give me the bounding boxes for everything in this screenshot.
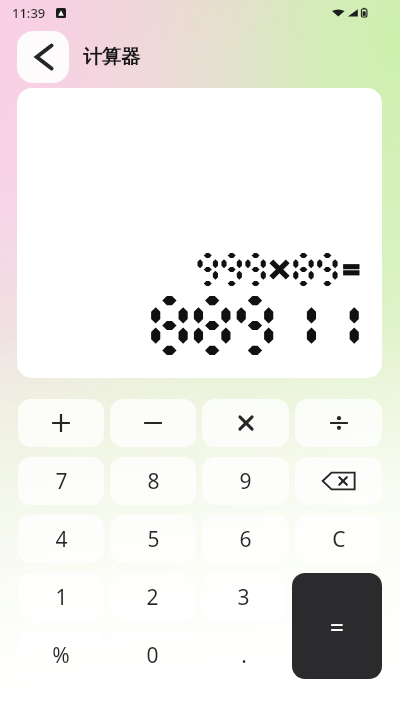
- button[interactable]: .: [201, 631, 286, 679]
- staticText: 8: [147, 467, 160, 496]
- button[interactable]: Divide: [295, 399, 382, 447]
- button[interactable]: %: [18, 631, 104, 679]
- button[interactable]: Multiply: [202, 399, 289, 447]
- button[interactable]: Plus: [18, 399, 104, 447]
- staticText: 2: [146, 583, 159, 612]
- staticText: 4: [55, 525, 68, 554]
- staticText: 0: [146, 641, 159, 670]
- staticText: .: [241, 641, 247, 670]
- button[interactable]: C: [295, 515, 382, 563]
- button[interactable]: 2: [110, 573, 195, 621]
- button[interactable]: 6: [202, 515, 289, 563]
- staticText: 3: [237, 583, 250, 612]
- button[interactable]: 5: [110, 515, 196, 563]
- staticText: %: [52, 641, 70, 670]
- button[interactable]: Back: [17, 31, 69, 83]
- staticText: =: [330, 610, 344, 643]
- button[interactable]: Backspace: [295, 457, 382, 505]
- button[interactable]: 7: [18, 457, 104, 505]
- button[interactable]: 0: [110, 631, 195, 679]
- staticText: 9: [239, 467, 252, 496]
- button[interactable]: 9: [202, 457, 289, 505]
- staticText: 计算器: [83, 45, 140, 69]
- button[interactable]: 1: [18, 573, 104, 621]
- button[interactable]: 4: [18, 515, 104, 563]
- button[interactable]: Minus: [110, 399, 196, 447]
- staticText: 1: [55, 583, 68, 612]
- staticText: 7: [55, 467, 68, 496]
- staticText: 5: [147, 525, 160, 554]
- staticText: 11:39: [12, 4, 46, 22]
- button[interactable]: 8: [110, 457, 196, 505]
- staticText: 6: [239, 525, 252, 554]
- button[interactable]: =: [292, 573, 382, 679]
- button[interactable]: 3: [201, 573, 286, 621]
- staticText: C: [332, 525, 346, 554]
